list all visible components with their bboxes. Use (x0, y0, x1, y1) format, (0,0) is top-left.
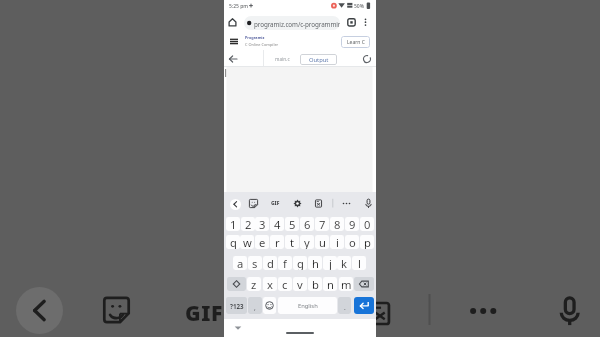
button[interactable]: j (323, 256, 337, 270)
staticText: 7 (319, 217, 326, 231)
button[interactable]: p (360, 235, 374, 249)
staticText: s (252, 256, 258, 270)
staticText: 50% (354, 3, 364, 10)
button[interactable]: Shift (227, 277, 246, 291)
button[interactable]: Back (230, 199, 241, 210)
button[interactable]: More options (359, 16, 372, 29)
button[interactable]: Enter (354, 297, 374, 314)
staticText: l (358, 256, 361, 270)
button[interactable]: k (337, 256, 351, 270)
button[interactable]: d (263, 256, 277, 270)
button[interactable]: m (339, 277, 353, 291)
button[interactable]: 4 (270, 217, 284, 231)
button[interactable]: w (240, 235, 254, 249)
button[interactable]: programiz.com/c-programming (244, 16, 340, 30)
button[interactable]: a (233, 256, 247, 270)
button[interactable]: Home (226, 16, 239, 29)
button[interactable]: 2 (241, 217, 255, 231)
staticText: 1 (230, 217, 237, 231)
staticText: programiz.com/c-programming (254, 20, 340, 29)
staticText: g (297, 256, 304, 270)
button[interactable]: 9 (345, 217, 359, 231)
button[interactable]: l (352, 256, 366, 270)
staticText: . (344, 303, 346, 312)
staticText: 8 (334, 217, 341, 231)
staticText: e (259, 235, 266, 249)
button[interactable]: f (278, 256, 292, 270)
staticText: 5:25 pm (229, 3, 249, 10)
button[interactable]: More (341, 198, 352, 209)
button[interactable]: o (345, 235, 359, 249)
button[interactable]: t (285, 235, 299, 249)
staticText: Output (309, 56, 329, 64)
button[interactable]: 8 (330, 217, 344, 231)
button[interactable]: ?123 (226, 297, 247, 314)
button[interactable]: 5 (285, 217, 299, 231)
button[interactable]: Menu (228, 35, 240, 47)
button[interactable]: q (226, 235, 240, 249)
staticText: h (312, 256, 319, 270)
staticText: t (290, 235, 295, 249)
staticText: GIF (185, 299, 223, 328)
button[interactable]: 1 (226, 217, 240, 231)
button[interactable]: , (248, 297, 262, 314)
button[interactable]: u (315, 235, 329, 249)
button[interactable]: e (255, 235, 269, 249)
staticText: C Online Compiler (245, 42, 279, 47)
staticText: 6 (304, 217, 311, 231)
button[interactable]: Refresh (361, 53, 373, 65)
staticText: f (283, 256, 287, 270)
button[interactable]: r (270, 235, 284, 249)
staticText: u (319, 235, 326, 249)
staticText: z (251, 277, 257, 291)
button[interactable]: 3 (255, 217, 269, 231)
button[interactable]: Translate (313, 198, 324, 209)
button[interactable]: Backspace (354, 277, 374, 291)
button[interactable]: 6 (300, 217, 314, 231)
staticText: p (364, 235, 371, 249)
button[interactable]: Switch tabs (345, 16, 358, 29)
button[interactable]: c (278, 277, 292, 291)
button[interactable]: Stickers (248, 198, 259, 209)
button[interactable]: x (263, 277, 277, 291)
staticText: 0 (364, 217, 371, 231)
button[interactable]: h (308, 256, 322, 270)
button[interactable]: English (278, 297, 337, 314)
button[interactable]: v (293, 277, 307, 291)
staticText: k (341, 256, 347, 270)
staticText: GIF (271, 200, 280, 207)
staticText: 9 (349, 217, 356, 231)
button[interactable]: n (323, 277, 337, 291)
staticText: r (275, 235, 280, 249)
button[interactable]: Hide keyboard (232, 321, 244, 333)
button[interactable]: 7 (315, 217, 329, 231)
staticText: a (237, 256, 244, 270)
staticText: b (312, 277, 319, 291)
button[interactable]: Settings (292, 198, 303, 209)
button[interactable]: Voice input (363, 198, 374, 209)
button[interactable]: 0 (360, 217, 374, 231)
staticText: 3 (259, 217, 266, 231)
staticText: n (327, 277, 334, 291)
staticText: o (349, 235, 356, 249)
button[interactable]: Emoji (263, 297, 276, 314)
button[interactable]: Output (300, 54, 337, 65)
button[interactable]: b (308, 277, 322, 291)
staticText: m (341, 277, 352, 291)
button[interactable]: s (248, 256, 262, 270)
button[interactable]: g (293, 256, 307, 270)
button[interactable]: y (300, 235, 314, 249)
button[interactable]: GIF (270, 198, 281, 209)
button[interactable]: Back (227, 53, 239, 65)
staticText: x (267, 277, 273, 291)
staticText: w (243, 235, 252, 249)
staticText: j (329, 256, 332, 270)
button[interactable]: i (330, 235, 344, 249)
staticText: Learn C (347, 39, 365, 46)
button[interactable]: z (247, 277, 261, 291)
staticText: y (304, 235, 310, 249)
staticText: v (297, 277, 303, 291)
staticText: 5 (289, 217, 296, 231)
button[interactable]: . (338, 297, 351, 314)
button[interactable]: Learn C (341, 36, 370, 48)
